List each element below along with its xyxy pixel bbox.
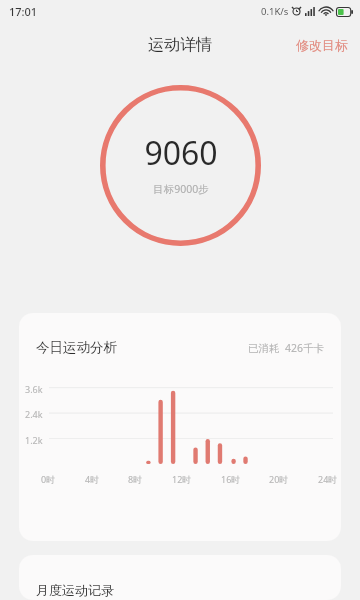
staticText: 9060	[144, 131, 218, 175]
staticText: 24时	[318, 473, 338, 485]
staticText: 2.4k	[25, 408, 43, 420]
staticText: 运动详情	[148, 35, 212, 55]
staticText: 3.6k	[25, 383, 43, 395]
staticText: 今日运动分析	[36, 339, 117, 356]
staticText: 8时	[128, 473, 143, 485]
staticText: 已消耗 426千卡	[248, 341, 324, 355]
staticText: 20时	[269, 473, 289, 485]
staticText: 0时	[41, 473, 56, 485]
staticText: 目标9000步	[153, 182, 209, 196]
staticText: 0.1K/s	[261, 5, 289, 18]
staticText: 1.2k	[25, 434, 43, 446]
staticText: 4时	[85, 473, 100, 485]
staticText: 17:01	[9, 4, 38, 19]
button[interactable]: 修改目标	[284, 27, 360, 63]
staticText: 修改目标	[296, 37, 348, 53]
button[interactable]: 今日运动分析	[19, 313, 341, 541]
button[interactable]: 月度运动记录	[19, 555, 341, 600]
staticText: 16时	[221, 473, 241, 485]
staticText: 12时	[172, 473, 192, 485]
staticText: 月度运动记录	[36, 582, 114, 598]
